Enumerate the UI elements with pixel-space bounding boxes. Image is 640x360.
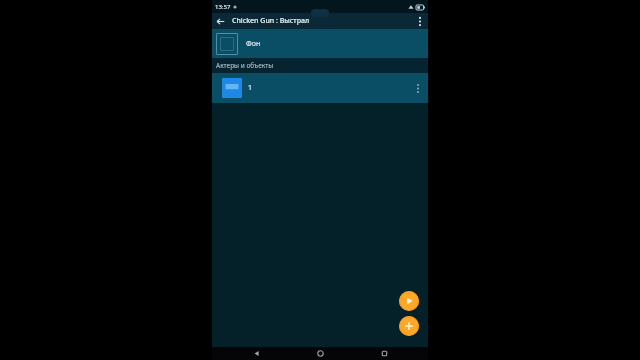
button[interactable]: Меню объекта <box>410 80 426 96</box>
button[interactable]: Назад <box>236 347 276 360</box>
button[interactable]: Назад <box>212 13 228 29</box>
staticText: Фон <box>246 39 261 49</box>
staticText: 13:57 <box>215 3 231 11</box>
staticText: Актеры и объекты <box>216 61 274 70</box>
staticText: 1 <box>248 83 410 93</box>
button[interactable]: Последние приложения <box>364 347 404 360</box>
button[interactable]: Ещё <box>412 13 428 29</box>
button[interactable]: Воспроизвести <box>399 291 419 311</box>
button[interactable]: Главный экран <box>300 347 340 360</box>
button[interactable]: 1 <box>212 73 428 103</box>
button[interactable]: Добавить <box>399 316 419 336</box>
staticText: Chicken Gun : Выстрал <box>232 16 412 26</box>
button[interactable]: Фон <box>212 29 428 58</box>
